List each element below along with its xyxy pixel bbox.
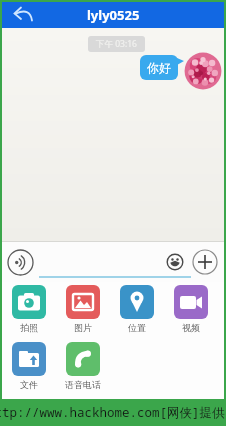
staticText: 图片	[74, 322, 92, 333]
button[interactable]	[7, 249, 34, 276]
button[interactable]: 拍照	[2, 285, 56, 333]
button[interactable]	[10, 3, 40, 27]
staticText: 文件	[20, 379, 38, 390]
staticText: 你好	[147, 60, 171, 75]
button[interactable]	[192, 249, 218, 275]
staticText: 视频	[182, 322, 200, 333]
button[interactable]: 图片	[56, 285, 110, 333]
button[interactable]: 文件	[2, 342, 56, 390]
staticText: lyly0525	[87, 6, 140, 24]
staticText: http://www.hackhome.com[网侠]提供	[0, 404, 225, 421]
button[interactable]: 语音电话	[56, 342, 110, 390]
button[interactable]: 位置	[110, 285, 164, 333]
button[interactable]	[166, 253, 184, 271]
staticText: 语音电话	[65, 379, 101, 390]
staticText: 下午 03:16	[96, 38, 137, 50]
button[interactable]: 视频	[164, 285, 218, 333]
button[interactable]: 你好	[140, 55, 178, 80]
button[interactable]	[184, 52, 222, 90]
staticText: 拍照	[20, 322, 38, 333]
staticText: 位置	[128, 322, 146, 333]
